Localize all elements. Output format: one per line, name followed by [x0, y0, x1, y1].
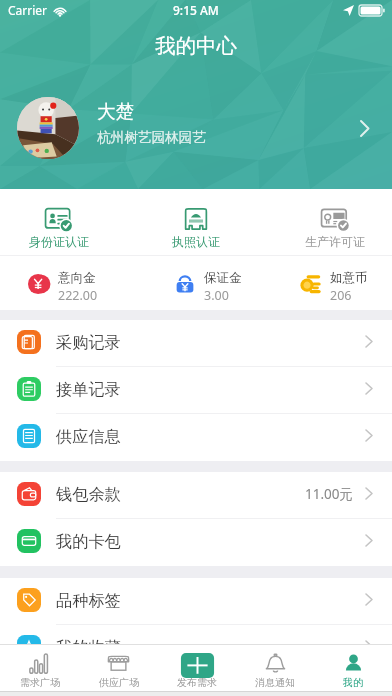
staticText: 供应信息 — [56, 426, 121, 446]
staticText: 意向金 — [58, 270, 96, 286]
button[interactable]: 大楚 — [0, 93, 392, 163]
button[interactable]: 我的收藏 — [0, 625, 392, 672]
staticText: 品种标签 — [56, 590, 121, 610]
staticText: 需求广场 — [20, 676, 60, 689]
staticText: 大楚 — [97, 100, 134, 123]
staticText: 我的中心 — [155, 33, 237, 59]
staticText: 执照认证 — [172, 234, 220, 249]
staticText: 3.00 — [204, 287, 229, 304]
staticText: 采购记录 — [56, 332, 121, 352]
staticText: 生产许可证 — [305, 234, 365, 249]
staticText: 我的收藏 — [56, 637, 121, 657]
staticText: 我的卡包 — [56, 531, 121, 551]
staticText: 接单记录 — [56, 379, 121, 399]
staticText: 保证金 — [204, 270, 242, 286]
staticText: 消息通知 — [255, 676, 295, 689]
button[interactable]: 接单记录 — [0, 367, 392, 414]
button[interactable]: 身份证认证 — [0, 189, 119, 249]
staticText: 钱包余款 — [56, 484, 121, 504]
staticText: 发布需求 — [177, 676, 217, 689]
staticText: 222.00 — [58, 287, 98, 304]
button[interactable]: 需求广场 — [0, 648, 79, 689]
staticText: 9:15 AM — [173, 2, 219, 18]
staticText: 供应广场 — [99, 676, 139, 689]
button[interactable]: 采购记录 — [0, 320, 392, 367]
button[interactable]: 消息通知 — [236, 648, 314, 689]
button[interactable]: 如意币 — [294, 256, 386, 310]
staticText: 206 — [330, 287, 352, 304]
button[interactable]: 我的 — [314, 648, 392, 689]
button[interactable]: 执照认证 — [136, 189, 256, 249]
button[interactable]: 发布需求 — [158, 648, 236, 689]
staticText: 如意币 — [330, 270, 368, 286]
staticText: 身份证认证 — [29, 234, 89, 249]
button[interactable]: 我的卡包 — [0, 519, 392, 566]
staticText: 杭州树艺园林园艺 — [97, 129, 206, 146]
button[interactable]: 意向金 — [22, 256, 140, 310]
staticText: 11.00元 — [305, 485, 354, 503]
button[interactable]: 钱包余款 — [0, 472, 392, 519]
button[interactable]: 生产许可证 — [275, 189, 392, 249]
button[interactable]: 供应信息 — [0, 414, 392, 461]
staticText: Carrier — [8, 2, 48, 18]
button[interactable]: 品种标签 — [0, 578, 392, 625]
button[interactable]: 保证金 — [168, 256, 286, 310]
button[interactable]: 供应广场 — [79, 648, 158, 689]
staticText: 我的 — [343, 676, 363, 689]
